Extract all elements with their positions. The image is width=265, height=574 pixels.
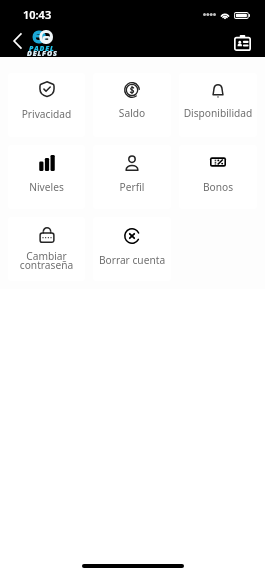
staticText: Borrar cuenta [93, 253, 171, 267]
button[interactable]: Back [6, 30, 28, 52]
staticText: Cambiar contraseña [8, 249, 85, 272]
button[interactable]: Disponibilidad [179, 73, 257, 137]
staticText: Disponibilidad [179, 106, 257, 120]
button[interactable]: Borrar cuenta [93, 217, 171, 281]
button[interactable]: Cambiar contraseña [8, 217, 85, 281]
staticText: DELFOS [27, 49, 58, 59]
staticText: 10:43 [23, 7, 52, 22]
staticText: Saldo [93, 106, 171, 120]
button[interactable]: Niveles [8, 145, 85, 209]
staticText: Privacidad [8, 107, 85, 121]
button[interactable]: Bonos [179, 145, 257, 209]
button[interactable]: Profile card [230, 31, 254, 55]
staticText: Niveles [8, 180, 85, 194]
staticText: Perfil [93, 180, 171, 194]
button[interactable]: Saldo [93, 73, 171, 137]
button[interactable]: Privacidad [8, 73, 85, 137]
staticText: PADEL [29, 44, 55, 54]
button[interactable]: Perfil [93, 145, 171, 209]
staticText: Bonos [179, 180, 257, 194]
